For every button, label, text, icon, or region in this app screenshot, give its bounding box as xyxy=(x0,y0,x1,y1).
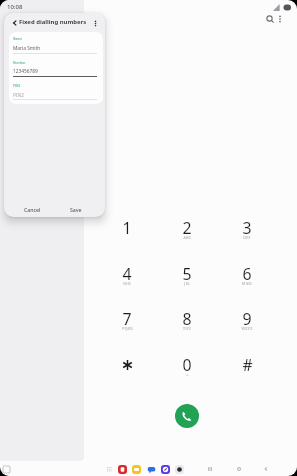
button[interactable]: Back xyxy=(259,462,273,476)
staticText: JKL xyxy=(184,281,191,286)
button[interactable] xyxy=(104,352,150,392)
staticText: MNO xyxy=(242,281,252,286)
button[interactable]: 1 xyxy=(104,215,150,255)
button[interactable]: Call xyxy=(175,404,199,428)
button[interactable]: App xyxy=(145,463,157,475)
staticText: GHI xyxy=(123,281,131,286)
staticText: WXYZ xyxy=(241,326,253,331)
staticText: 5 xyxy=(182,263,192,285)
button[interactable]: # xyxy=(224,352,270,392)
staticText: # xyxy=(242,354,253,376)
staticText: 4 xyxy=(122,263,132,285)
button[interactable]: App xyxy=(116,463,128,475)
staticText: ABC xyxy=(183,235,192,240)
button[interactable]: 7 xyxy=(104,306,150,346)
staticText: 6 xyxy=(242,263,252,285)
button[interactable]: Save xyxy=(58,200,94,217)
staticText: Maria Smith xyxy=(13,45,41,52)
button[interactable]: Recents xyxy=(203,462,217,476)
button[interactable]: 6 xyxy=(224,261,270,301)
button[interactable]: 5 xyxy=(164,261,210,301)
staticText: 10:08 xyxy=(7,3,23,11)
staticText: Number xyxy=(13,61,26,65)
button[interactable]: More options xyxy=(89,17,102,30)
staticText: Name xyxy=(13,37,23,41)
button[interactable]: App xyxy=(159,463,171,475)
button[interactable]: 0 xyxy=(164,352,210,392)
button[interactable]: 9 xyxy=(224,306,270,346)
staticText: 1 xyxy=(122,217,132,239)
button[interactable]: Search xyxy=(262,11,278,27)
staticText: PQRS xyxy=(122,326,133,331)
button[interactable]: Screenshot xyxy=(1,464,11,474)
button[interactable]: More options xyxy=(272,11,288,27)
staticText: 0 xyxy=(182,354,192,376)
staticText: Cancel xyxy=(24,206,41,213)
staticText: PIN2 xyxy=(13,92,24,99)
button[interactable]: Back xyxy=(8,16,21,29)
staticText: + xyxy=(186,372,189,377)
button[interactable]: Cancel xyxy=(14,200,50,217)
button[interactable]: 8 xyxy=(164,306,210,346)
staticText: 3 xyxy=(242,217,252,239)
button[interactable]: Home xyxy=(232,462,246,476)
button[interactable]: 4 xyxy=(104,261,150,301)
button[interactable]: All apps xyxy=(104,464,113,473)
button[interactable]: App xyxy=(173,463,185,475)
staticText: 8 xyxy=(182,308,192,330)
staticText: 9 xyxy=(242,308,252,330)
button[interactable]: 2 xyxy=(164,215,210,255)
button[interactable]: App xyxy=(130,463,142,475)
staticText: 7 xyxy=(122,308,132,330)
staticText: PIN2 xyxy=(13,84,21,88)
button[interactable]: 3 xyxy=(224,215,270,255)
staticText: DEF xyxy=(243,235,251,240)
staticText: Save xyxy=(70,206,82,213)
staticText: TUV xyxy=(183,326,191,331)
staticText: 123456789 xyxy=(13,68,38,75)
staticText: 2 xyxy=(182,217,192,239)
staticText: Fixed dialling numbers xyxy=(19,18,87,26)
